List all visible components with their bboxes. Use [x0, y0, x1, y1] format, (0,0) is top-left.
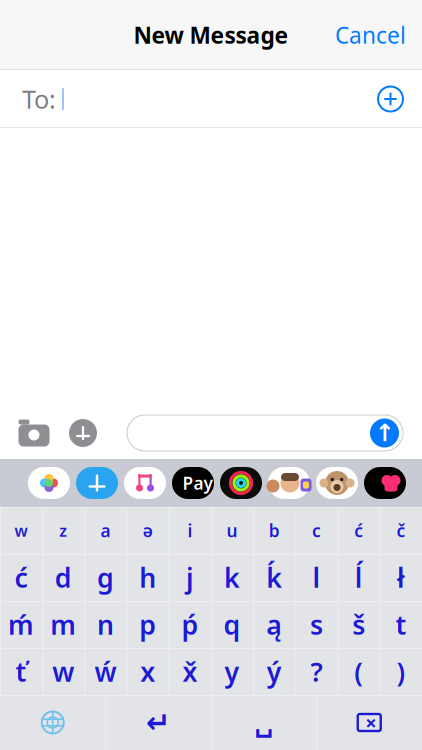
button[interactable]: z — [42, 507, 84, 554]
button[interactable]: Next keyboard — [0, 695, 105, 750]
button[interactable]: u — [211, 507, 253, 554]
staticText: ? — [310, 654, 322, 689]
staticText: ć — [354, 519, 363, 542]
button[interactable]: t — [380, 601, 422, 648]
button[interactable]: ť — [0, 648, 42, 695]
button[interactable]: l — [295, 554, 338, 601]
button[interactable]: ḿ — [0, 601, 42, 648]
button[interactable]: App — [25, 467, 73, 499]
staticText: y — [225, 654, 240, 689]
staticText: č — [396, 519, 405, 542]
button[interactable]: Camera — [0, 411, 60, 455]
button[interactable]: n — [84, 601, 127, 648]
staticText: q — [224, 607, 241, 642]
button[interactable]: Cancel — [319, 10, 422, 60]
staticText: x — [140, 654, 155, 689]
staticText: ć — [15, 560, 28, 595]
button[interactable]: d — [42, 554, 84, 601]
button[interactable]: App — [313, 467, 361, 499]
button[interactable]: h — [127, 554, 169, 601]
button[interactable]: ( — [338, 648, 380, 695]
staticText: š — [352, 607, 365, 642]
staticText: ḿ — [8, 607, 34, 642]
staticText: ť — [16, 654, 27, 689]
button[interactable]: Return — [105, 695, 211, 750]
staticText: ý — [267, 654, 282, 689]
button[interactable]: i — [169, 507, 211, 554]
button[interactable]: ə — [127, 507, 169, 554]
button[interactable]: x̌ — [169, 648, 211, 695]
button[interactable]: ć — [0, 554, 42, 601]
staticText: u — [227, 519, 238, 542]
button[interactable]: ć — [338, 507, 380, 554]
staticText: t — [395, 607, 406, 642]
staticText: h — [139, 560, 156, 595]
button[interactable]: ṕ — [169, 601, 211, 648]
staticText: l — [312, 560, 320, 595]
staticText: n — [97, 607, 114, 642]
staticText: w — [52, 654, 74, 689]
staticText: ↵ — [146, 706, 171, 739]
staticText: ) — [396, 654, 405, 689]
button[interactable]: App — [73, 467, 121, 499]
staticText: ↑ — [374, 419, 394, 447]
staticText: a — [100, 519, 110, 542]
button[interactable]: App — [121, 467, 169, 499]
staticText: ẃ — [94, 654, 116, 689]
staticText: w — [15, 520, 28, 541]
button[interactable]: q — [211, 601, 253, 648]
staticText: Pay — [182, 471, 212, 494]
staticText: ( — [354, 654, 363, 689]
staticText: ĺ — [355, 560, 363, 595]
button[interactable]: w — [0, 507, 42, 554]
staticText: m — [50, 607, 76, 642]
button[interactable]: w — [42, 648, 84, 695]
button[interactable]: ĺ — [338, 554, 380, 601]
staticText: ṕ — [181, 607, 198, 642]
staticText: x̌ — [182, 654, 197, 689]
staticText: ą — [266, 607, 282, 642]
button[interactable]: j — [169, 554, 211, 601]
staticText: g — [97, 560, 114, 595]
button[interactable]: Send — [369, 417, 400, 448]
button[interactable]: App — [217, 467, 265, 499]
button[interactable]: ł — [380, 554, 422, 601]
button[interactable]: App — [361, 467, 409, 499]
button[interactable]: g — [84, 554, 127, 601]
button[interactable]: c — [295, 507, 338, 554]
button[interactable]: App — [169, 467, 217, 499]
button[interactable]: ý — [253, 648, 295, 695]
button[interactable]: m — [42, 601, 84, 648]
staticText: Cancel — [335, 20, 406, 50]
button[interactable]: Add contact — [377, 77, 422, 120]
button[interactable]: p — [127, 601, 169, 648]
button[interactable]: ą — [253, 601, 295, 648]
button[interactable]: k — [211, 554, 253, 601]
staticText: d — [55, 560, 72, 595]
staticText: b — [269, 519, 280, 542]
button[interactable]: ẃ — [84, 648, 127, 695]
staticText: ␣ — [254, 707, 273, 738]
staticText: To: — [22, 82, 56, 116]
staticText: j — [186, 560, 194, 595]
button[interactable]: iMessage Apps — [60, 410, 106, 456]
button[interactable]: ) — [380, 648, 422, 695]
staticText: ə — [143, 519, 153, 542]
button[interactable]: č — [380, 507, 422, 554]
button[interactable]: s — [295, 601, 338, 648]
button[interactable]: x — [127, 648, 169, 695]
staticText: k — [224, 560, 240, 595]
button[interactable]: a — [84, 507, 127, 554]
staticText: New Message — [133, 20, 288, 50]
button[interactable]: ? — [295, 648, 338, 695]
button[interactable]: š — [338, 601, 380, 648]
staticText: ḱ — [266, 560, 282, 595]
button[interactable]: Delete — [316, 695, 422, 750]
staticText: p — [139, 607, 156, 642]
staticText: ł — [397, 560, 405, 595]
button[interactable]: ḱ — [253, 554, 295, 601]
button[interactable]: Space — [211, 695, 316, 750]
button[interactable]: App — [265, 467, 313, 499]
button[interactable]: b — [253, 507, 295, 554]
button[interactable]: y — [211, 648, 253, 695]
